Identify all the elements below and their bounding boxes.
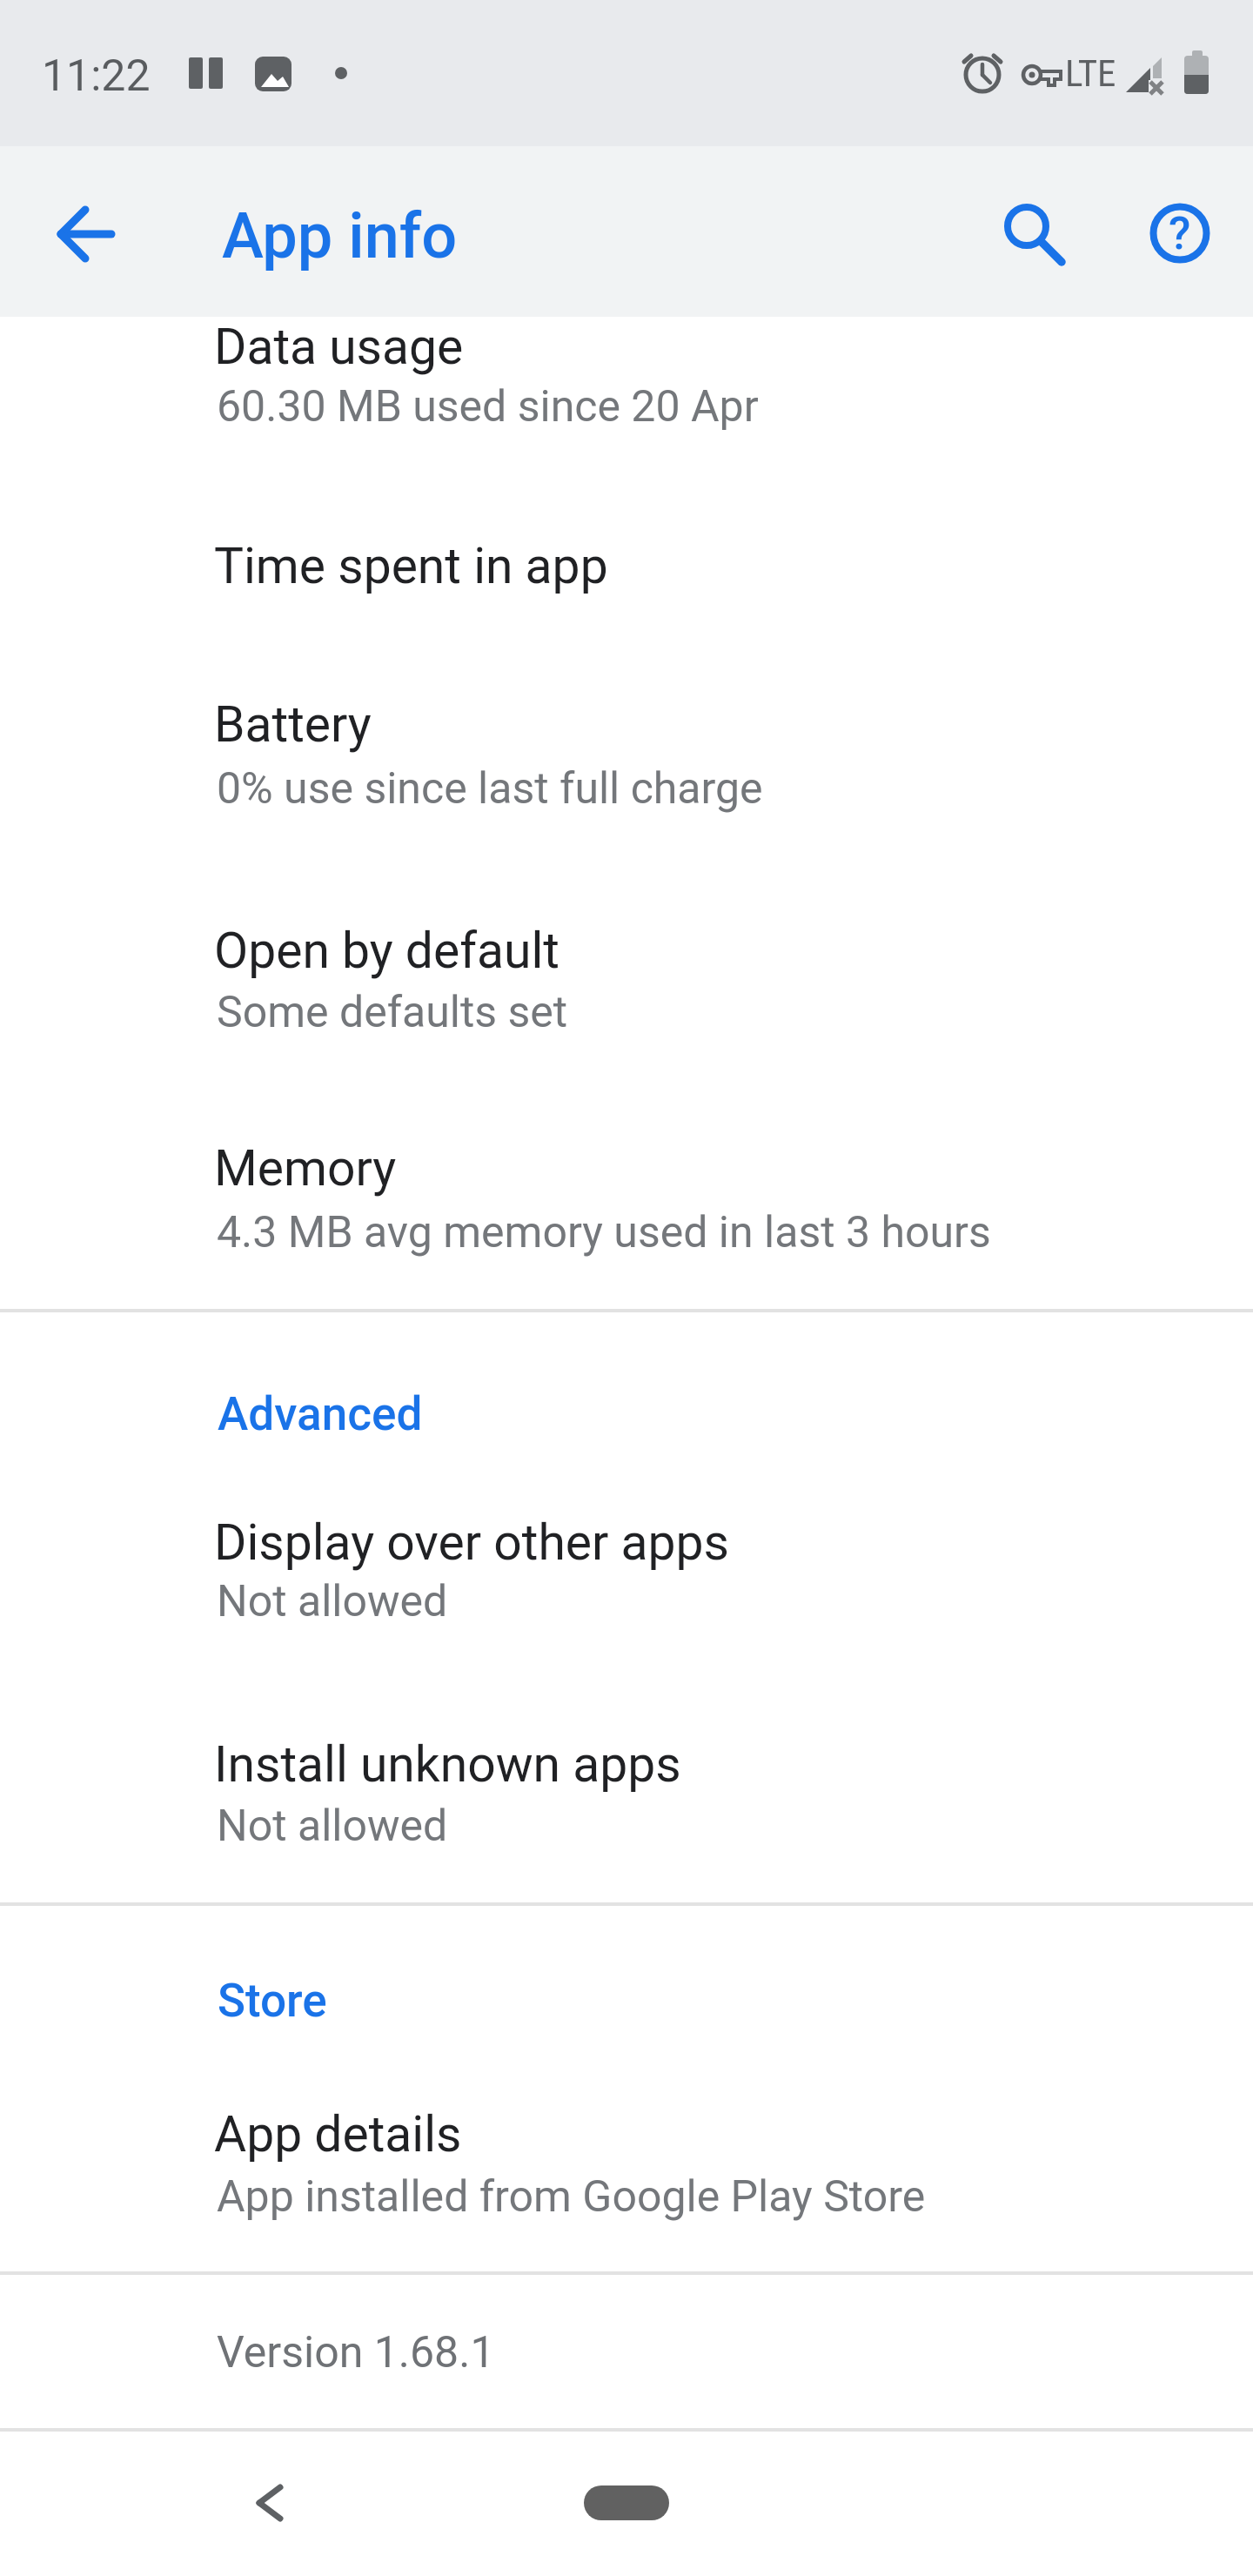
staticText: Battery	[214, 695, 372, 754]
staticText: 11:22	[42, 50, 151, 102]
staticText: Not allowed	[217, 1801, 448, 1852]
staticText: Install unknown apps	[214, 1735, 681, 1794]
button[interactable]	[37, 184, 135, 282]
button[interactable]	[0, 317, 1253, 530]
button[interactable]	[0, 2096, 1253, 2271]
staticText: Memory	[214, 1139, 397, 1197]
button[interactable]	[0, 1727, 1253, 1902]
staticText: 0% use since last full charge	[217, 763, 763, 815]
button[interactable]	[0, 922, 1253, 1142]
staticText: ?	[1169, 207, 1191, 259]
staticText: Data usage	[214, 318, 464, 376]
button[interactable]	[0, 530, 1253, 704]
button[interactable]	[0, 704, 1253, 922]
staticText: App details	[214, 2105, 462, 2163]
staticText: Some defaults set	[217, 987, 568, 1038]
staticText: Display over other apps	[214, 1513, 729, 1572]
staticText: Not allowed	[217, 1576, 448, 1627]
staticText: 60.30 MB used since 20 Apr	[217, 381, 759, 433]
staticText: Time spent in app	[214, 537, 608, 595]
staticText: App info	[222, 199, 458, 272]
button[interactable]	[584, 2485, 669, 2520]
staticText: Store	[218, 1974, 327, 2028]
staticText: LTE	[1065, 51, 1116, 95]
button[interactable]	[979, 184, 1076, 282]
button[interactable]	[0, 1142, 1253, 1309]
button[interactable]	[218, 2451, 322, 2555]
staticText: Advanced	[218, 1387, 423, 1441]
staticText: App installed from Google Play Store	[217, 2171, 926, 2223]
staticText: 4.3 MB avg memory used in last 3 hours	[217, 1207, 991, 1258]
button[interactable]	[0, 1505, 1253, 1727]
staticText: Open by default	[214, 922, 559, 980]
button[interactable]	[0, 2273, 1253, 2428]
button[interactable]	[1132, 184, 1230, 282]
staticText: Version 1.68.1	[217, 2327, 495, 2378]
